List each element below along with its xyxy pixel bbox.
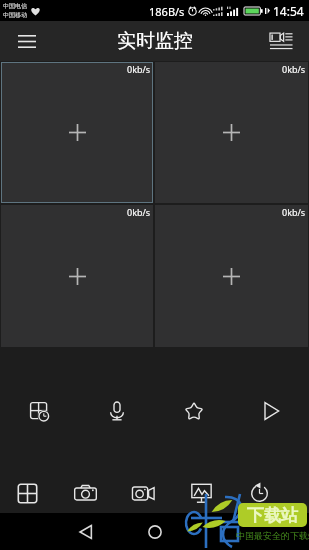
staticText: 186B/s (149, 4, 185, 19)
button[interactable]: Back (66, 513, 105, 550)
staticText: 中国移动 (3, 11, 27, 19)
button[interactable]: 0kb/s (1, 62, 153, 203)
staticText: 0kb/s (127, 206, 151, 218)
staticText: 实时监控 (117, 29, 193, 53)
button[interactable]: Gallery (180, 468, 222, 510)
staticText: 0kb/s (282, 206, 306, 218)
staticText: 中国电信 (3, 2, 27, 10)
staticText: 下载站 (247, 505, 298, 526)
button[interactable]: Play (232, 384, 309, 430)
button[interactable]: Favorite (155, 384, 232, 430)
button[interactable]: Grid view (6, 468, 48, 510)
button[interactable]: Record (122, 468, 164, 510)
staticText: 0kb/s (127, 63, 151, 75)
button[interactable]: 0kb/s (155, 62, 308, 203)
button[interactable]: Device list (264, 24, 298, 58)
button[interactable]: Snapshot (64, 468, 106, 510)
staticText: 0kb/s (282, 63, 306, 75)
button[interactable]: Microphone (78, 384, 155, 430)
button[interactable]: Home (135, 513, 174, 550)
button[interactable]: 0kb/s (155, 205, 308, 347)
button[interactable]: Recents (204, 513, 243, 550)
staticText: 中国最安全的下载站 (236, 530, 309, 541)
button[interactable]: Menu (10, 24, 44, 58)
button[interactable]: Playback (0, 384, 78, 430)
button[interactable]: History (238, 468, 280, 510)
button[interactable]: 0kb/s (1, 205, 153, 347)
staticText: 14:54 (273, 3, 304, 19)
